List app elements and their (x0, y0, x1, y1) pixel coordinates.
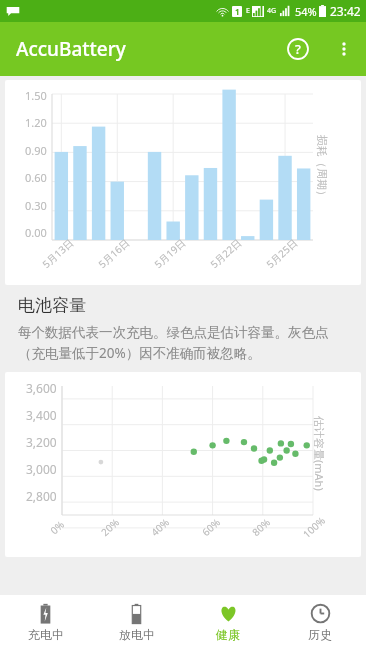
staticText: AccuBattery (16, 36, 126, 62)
button[interactable]: 放电中 (91, 595, 182, 650)
button[interactable]: More options (322, 27, 366, 71)
staticText: 4G (267, 6, 277, 16)
staticText: 1.20 (25, 115, 47, 130)
staticText: 1 (235, 6, 240, 17)
staticText: 历史 (308, 627, 332, 642)
staticText: 损耗（周期） (315, 135, 329, 201)
staticText: 5月25日 (263, 235, 301, 271)
staticText: 40% (148, 515, 172, 539)
staticText: 5月13日 (39, 235, 77, 271)
staticText: 2,800 (26, 488, 57, 504)
staticText: 3,200 (26, 434, 57, 450)
button[interactable]: 健康 (182, 595, 274, 650)
staticText: 54% (295, 4, 317, 19)
staticText: 估计容量(mAh) (312, 416, 327, 491)
staticText: 5月16日 (95, 235, 133, 271)
button[interactable]: 历史 (274, 595, 366, 650)
staticText: 5月22日 (207, 235, 245, 271)
staticText: 电池容量 (18, 295, 86, 316)
staticText: 3,600 (26, 380, 57, 396)
staticText: 0.30 (25, 198, 47, 213)
button[interactable]: 充电中 (0, 595, 91, 650)
staticText: E (246, 6, 250, 16)
staticText: 每个数据代表一次充电。绿色点是估计容量。灰色点（充电量低于20%）因不准确而被忽… (18, 324, 348, 362)
staticText: 健康 (216, 627, 240, 642)
staticText: 0.00 (25, 225, 47, 240)
staticText: 23:42 (330, 3, 361, 19)
staticText: 1.50 (25, 88, 47, 103)
staticText: 100% (300, 513, 328, 541)
staticText: 充电中 (28, 627, 64, 642)
staticText: 3,400 (26, 407, 57, 423)
staticText: 0.60 (25, 170, 47, 185)
staticText: 3,000 (26, 461, 57, 477)
staticText: 0% (47, 517, 68, 537)
staticText: 0.90 (25, 143, 47, 158)
button[interactable]: Help (274, 25, 322, 73)
staticText: 20% (98, 515, 122, 539)
staticText: 60% (199, 515, 223, 539)
staticText: 80% (249, 515, 273, 539)
staticText: 5月19日 (151, 235, 189, 271)
staticText: ? (295, 40, 301, 58)
staticText: 放电中 (119, 627, 155, 642)
